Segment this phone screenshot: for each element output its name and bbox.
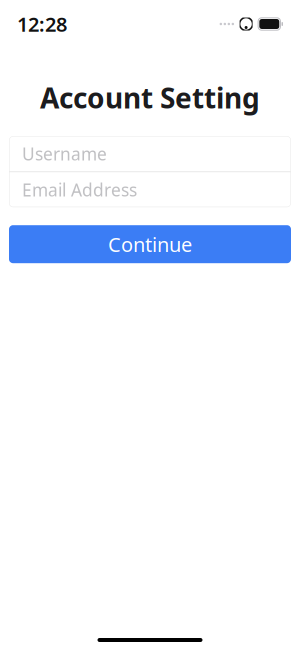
staticText: Email Address — [22, 178, 137, 201]
staticText: 12:28 — [17, 11, 67, 37]
staticText: Username — [22, 142, 107, 165]
staticText: Account Setting — [40, 79, 260, 116]
button[interactable]: Email Address — [9, 172, 291, 207]
staticText: Continue — [108, 231, 192, 257]
button[interactable]: Username — [9, 136, 291, 171]
button[interactable]: Continue — [9, 225, 291, 263]
